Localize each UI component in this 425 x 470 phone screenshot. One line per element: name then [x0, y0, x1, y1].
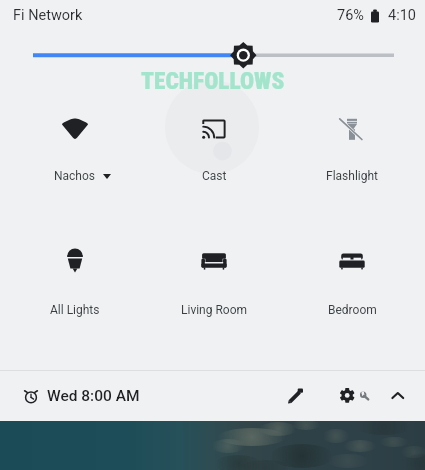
staticText: Flashlight [326, 169, 378, 183]
button[interactable]: Settings [329, 378, 365, 414]
button[interactable]: Collapse [380, 378, 416, 414]
staticText: All Lights [50, 303, 100, 317]
staticText: TECHFOLLOWS [141, 67, 285, 94]
button[interactable] [288, 225, 416, 297]
staticText: 4:10 [388, 7, 416, 24]
button[interactable] [150, 225, 278, 297]
staticText: Cast [202, 169, 227, 183]
staticText: Bedroom [328, 303, 377, 317]
button[interactable] [11, 225, 139, 297]
staticText: Wed 8:00 AM [47, 387, 140, 405]
staticText: Fi Network [13, 7, 83, 24]
button[interactable] [11, 93, 139, 165]
staticText: 76% [337, 7, 364, 24]
button[interactable]: Brightness [0, 0, 425, 421]
staticText: Living Room [181, 303, 248, 317]
button[interactable] [288, 93, 416, 165]
staticText: Nachos [54, 169, 96, 183]
button[interactable]: Wed 8:00 AM [23, 387, 140, 405]
button[interactable] [150, 93, 278, 165]
button[interactable]: Edit tiles [278, 378, 314, 414]
